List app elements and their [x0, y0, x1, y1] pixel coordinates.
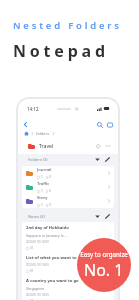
staticText: Notepad	[13, 40, 109, 62]
button[interactable]: Story	[26, 194, 111, 208]
button[interactable]: List of what you want to do	[26, 255, 111, 273]
staticText: Traffic	[37, 181, 50, 187]
staticText: 1	[41, 203, 43, 207]
button[interactable]: Sort	[94, 142, 102, 150]
button[interactable]: More	[104, 142, 112, 150]
staticText: Easy to organize	[80, 250, 128, 258]
staticText: List of what you want to do	[26, 255, 83, 261]
staticText: 0	[49, 175, 51, 179]
button[interactable]: A country you want to go	[26, 278, 111, 300]
staticText: Folders (3)	[28, 157, 48, 162]
staticText: Sapporo in January is ...	[26, 233, 68, 238]
staticText: 01	[30, 299, 34, 300]
button[interactable]: Journal	[26, 166, 111, 180]
staticText: Notes (4)	[28, 214, 45, 219]
button[interactable]: Edit	[104, 213, 111, 220]
staticText: Story	[37, 195, 48, 201]
button[interactable]: Edit	[104, 156, 111, 163]
button[interactable]: New folder	[105, 120, 114, 129]
staticText: 1	[41, 175, 43, 179]
staticText: 2nd day of Hokkaido	[26, 225, 69, 231]
button[interactable]: Travel	[28, 138, 112, 154]
button[interactable]: 2nd day of Hokkaido	[26, 225, 111, 250]
staticText: Journal	[37, 167, 52, 173]
button[interactable]: Easy to organize	[77, 238, 131, 292]
button[interactable]: Traffic	[26, 180, 111, 194]
staticText: 01	[30, 246, 34, 250]
staticText: 2020/01/16 18:00	[26, 240, 49, 244]
staticText: 1	[41, 189, 43, 193]
staticText: No. 1	[84, 259, 124, 281]
button[interactable]: Sort	[94, 213, 101, 220]
staticText: Singapore	[26, 286, 45, 291]
staticText: 2020/01/16 18:00	[26, 263, 49, 267]
staticText: folders	[36, 131, 50, 136]
staticText: 14:12	[27, 106, 39, 112]
staticText: 0	[49, 203, 51, 207]
button[interactable]: Back	[20, 119, 31, 130]
staticText: 01	[30, 269, 34, 273]
staticText: 0	[49, 189, 51, 193]
staticText: Travel	[39, 143, 54, 150]
staticText: 2020/01/16 18:00	[26, 293, 49, 297]
staticText: Nested Folders	[13, 19, 122, 32]
staticText: A country you want to go	[26, 278, 79, 284]
button[interactable]: Sort	[94, 156, 101, 163]
button[interactable]: Search	[95, 120, 104, 129]
